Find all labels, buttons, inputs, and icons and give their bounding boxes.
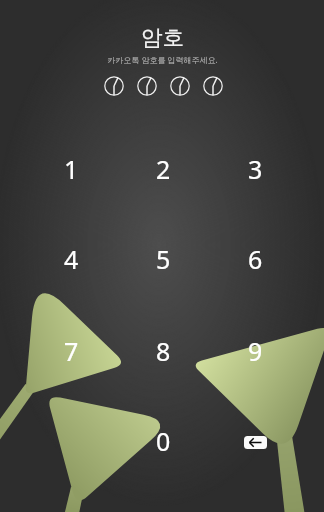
staticText: 4 bbox=[64, 242, 79, 276]
staticText: 8 bbox=[156, 334, 171, 368]
staticText: 6 bbox=[248, 242, 263, 276]
staticText: 2 bbox=[156, 152, 171, 186]
button[interactable]: 4 bbox=[39, 237, 103, 281]
button[interactable]: 0 bbox=[131, 419, 195, 463]
staticText: 9 bbox=[248, 334, 263, 368]
button[interactable]: 6 bbox=[223, 237, 287, 281]
button[interactable]: 2 bbox=[131, 147, 195, 191]
button[interactable]: 9 bbox=[223, 329, 287, 373]
staticText: 7 bbox=[64, 334, 79, 368]
button[interactable]: 3 bbox=[223, 147, 287, 191]
button[interactable]: Backspace bbox=[244, 436, 267, 449]
staticText: 0 bbox=[156, 424, 171, 458]
button[interactable]: 5 bbox=[131, 237, 195, 281]
staticText: 카카오톡 암호를 입력해주세요. bbox=[107, 54, 218, 65]
staticText: 5 bbox=[156, 242, 171, 276]
staticText: 1 bbox=[64, 152, 79, 186]
button[interactable]: 7 bbox=[39, 329, 103, 373]
button[interactable]: 8 bbox=[131, 329, 195, 373]
staticText: 암호 bbox=[141, 24, 184, 51]
button[interactable]: 1 bbox=[39, 147, 103, 191]
staticText: 3 bbox=[248, 152, 263, 186]
